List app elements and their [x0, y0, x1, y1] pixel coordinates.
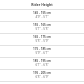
- staticText: Rider Height: [31, 2, 53, 7]
- staticText: 145 - 155 cm: [33, 11, 51, 15]
- staticText: 175 - 185 cm: [33, 47, 51, 51]
- button[interactable]: 145 - 155 cm: [0, 10, 84, 21]
- staticText: 155 - 165 cm: [33, 23, 51, 27]
- staticText: 195 - 205 cm: [33, 71, 51, 75]
- staticText: 6'1" - 6'5": [35, 63, 49, 67]
- staticText: 5'5" - 5'9": [35, 39, 49, 43]
- button[interactable]: Rider Height: [0, 0, 84, 9]
- staticText: 165 - 175 cm: [33, 35, 51, 39]
- button[interactable]: 185 - 195 cm: [0, 58, 84, 69]
- button[interactable]: 155 - 165 cm: [0, 22, 84, 33]
- staticText: 4'9" - 5'1": [35, 15, 49, 19]
- button[interactable]: 175 - 185 cm: [0, 46, 84, 57]
- staticText: 5'1" - 5'5": [35, 27, 49, 31]
- staticText: 185 - 195 cm: [33, 59, 51, 63]
- button[interactable]: 165 - 175 cm: [0, 34, 84, 45]
- staticText: 6'5" - 6'9": [35, 75, 49, 79]
- button[interactable]: 195 - 205 cm: [0, 70, 84, 81]
- staticText: 5'9" - 6'1": [35, 51, 49, 55]
